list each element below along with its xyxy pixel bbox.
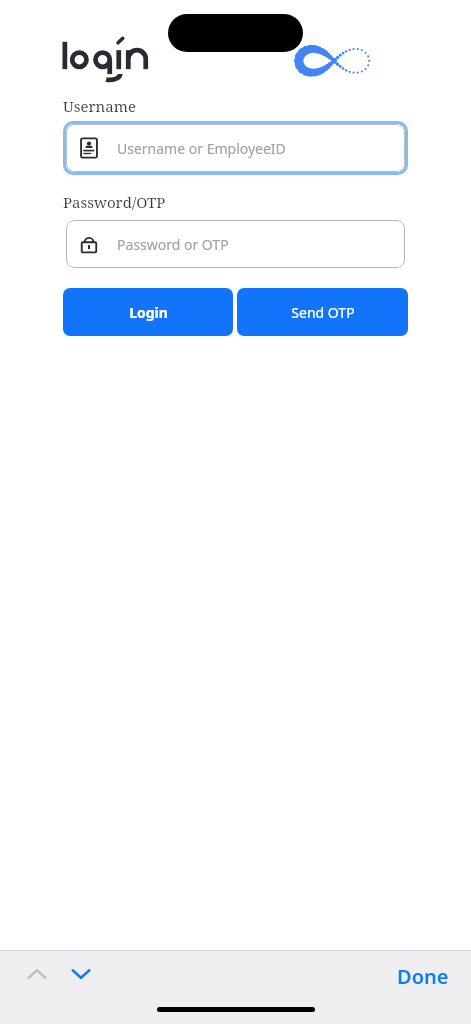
button[interactable]: Login xyxy=(63,288,233,336)
button[interactable]: Username or EmployeeID xyxy=(66,124,405,172)
staticText: Send OTP xyxy=(291,303,355,322)
staticText: Login xyxy=(129,303,168,322)
staticText: Password or OTP xyxy=(117,235,229,254)
button[interactable]: Previous field xyxy=(14,951,60,997)
staticText: Username or EmployeeID xyxy=(117,139,286,158)
button[interactable]: Send OTP xyxy=(237,288,408,336)
staticText: Username xyxy=(63,96,136,116)
button[interactable]: Next field xyxy=(58,951,104,997)
staticText: Password/OTP xyxy=(63,192,166,212)
button[interactable]: Done xyxy=(389,955,457,998)
button[interactable]: Password or OTP xyxy=(66,220,405,268)
staticText: Done xyxy=(397,963,449,990)
